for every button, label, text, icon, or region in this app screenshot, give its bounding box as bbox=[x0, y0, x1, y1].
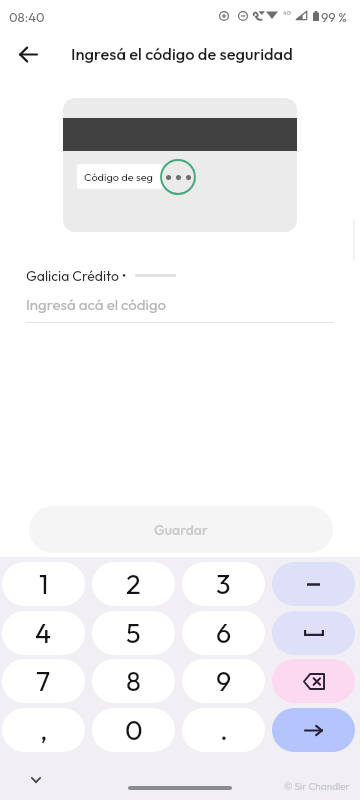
staticText: 9 bbox=[216, 664, 232, 698]
staticText: 6 bbox=[216, 616, 232, 650]
staticText: Guardar bbox=[154, 521, 208, 539]
button[interactable]: Volver bbox=[8, 34, 48, 74]
button[interactable]: Ocultar teclado bbox=[26, 770, 46, 790]
staticText: 2 bbox=[126, 567, 141, 601]
button[interactable]: 1 bbox=[2, 562, 85, 606]
button[interactable]: 5 bbox=[92, 611, 175, 655]
button[interactable]: 8 bbox=[92, 659, 175, 703]
button[interactable]: 7 bbox=[2, 659, 85, 703]
button[interactable]: 0 bbox=[92, 708, 175, 752]
staticText: Ingresá acá el código bbox=[26, 295, 167, 314]
button[interactable]: Guion bbox=[272, 562, 355, 606]
staticText: 8 bbox=[126, 664, 141, 698]
staticText: Galicia Crédito • bbox=[26, 267, 127, 285]
staticText: 4 bbox=[35, 616, 52, 650]
button[interactable]: , bbox=[2, 708, 85, 752]
staticText: 08:40 bbox=[9, 9, 45, 25]
staticText: © Sir Chandler bbox=[284, 780, 350, 793]
staticText: 99 % bbox=[321, 9, 347, 25]
button[interactable]: Enter bbox=[272, 708, 355, 752]
staticText: 3 bbox=[216, 567, 231, 601]
button[interactable]: Borrar bbox=[272, 659, 355, 703]
staticText: , bbox=[40, 713, 48, 747]
staticText: Ingresá el código de seguridad bbox=[71, 43, 293, 64]
staticText: Código de seg bbox=[84, 170, 153, 184]
staticText: 7 bbox=[36, 664, 51, 698]
staticText: 1 bbox=[39, 567, 49, 601]
button[interactable]: 6 bbox=[182, 611, 265, 655]
staticText: 4G bbox=[283, 9, 292, 17]
button[interactable]: 4 bbox=[2, 611, 85, 655]
staticText: . bbox=[220, 713, 228, 747]
button[interactable]: Espacio bbox=[272, 611, 355, 655]
button[interactable]: . bbox=[182, 708, 265, 752]
button[interactable]: 9 bbox=[182, 659, 265, 703]
button[interactable]: Guardar bbox=[29, 506, 333, 553]
staticText: 0 bbox=[125, 713, 143, 747]
button[interactable]: 2 bbox=[92, 562, 175, 606]
button[interactable]: 3 bbox=[182, 562, 265, 606]
staticText: 5 bbox=[126, 616, 141, 650]
